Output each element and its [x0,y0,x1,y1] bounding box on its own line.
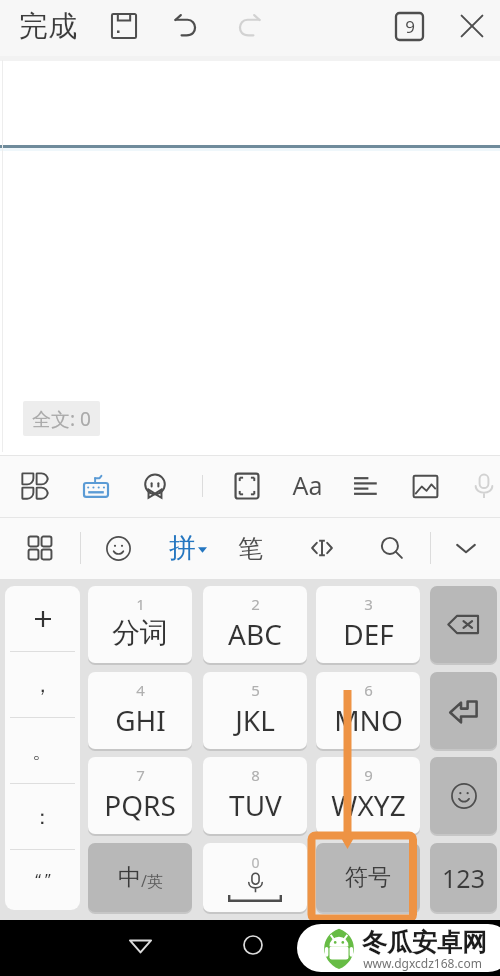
button[interactable]: Move cursor [304,530,340,566]
button[interactable]: 中 [88,843,192,912]
staticText: 6 [364,680,373,700]
button[interactable]: Voice [466,468,500,504]
staticText: 1 [136,594,145,614]
button[interactable]: Back [122,927,158,963]
staticText: TUV [229,786,282,824]
staticText: 冬瓜安卓网 [362,927,487,958]
button[interactable]: 123 [430,843,497,912]
staticText: ABC [228,615,282,653]
staticText: 完成 [19,8,77,45]
button[interactable]: 完成 [8,6,88,46]
button[interactable]: 0 [203,843,307,912]
staticText: ： [32,804,53,830]
staticText: 9 [405,15,415,38]
staticText: “ ” [35,869,51,891]
button[interactable]: “ ” [5,850,80,910]
staticText: 8 [251,765,260,785]
staticText: JKL [235,701,275,739]
button[interactable]: Hide keyboard [448,530,484,566]
staticText: 全文: 0 [32,406,91,432]
staticText: GHI [115,701,166,739]
button[interactable]: 笔 [230,530,270,566]
button[interactable]: Font [285,467,329,503]
staticText: Aa [292,468,323,502]
button[interactable]: 4 [88,672,192,749]
staticText: 拼 [169,531,196,565]
staticText: DEF [343,615,394,653]
button[interactable] [430,757,497,834]
staticText: 笔 [238,533,263,564]
button[interactable]: Save [106,8,142,44]
button[interactable]: Apps [17,468,53,504]
button[interactable]: Search [374,530,410,566]
button[interactable]: 7 [88,757,192,834]
staticText: 7 [136,765,145,785]
button[interactable]: Word count [391,8,427,44]
button[interactable]: Close [454,8,490,44]
button[interactable]: 2 [203,586,307,663]
button[interactable] [430,672,497,749]
button[interactable]: 5 [203,672,307,749]
staticText: www.dgxcdz168.com [363,955,482,971]
button[interactable]: 拼 [164,530,212,566]
button[interactable]: ， [5,652,80,717]
button[interactable]: 1 [88,586,192,663]
staticText: 中 [118,863,141,892]
button[interactable]: Keyboard [78,468,114,504]
staticText: 2 [251,594,260,614]
button[interactable]: 9 [316,757,420,834]
button[interactable]: 3 [316,586,420,663]
button[interactable]: Redo [231,8,267,44]
button[interactable] [430,586,497,663]
button[interactable]: Emoji [100,530,136,566]
staticText: PQRS [104,786,176,824]
staticText: ， [32,672,53,698]
button[interactable]: Undo [168,8,204,44]
button[interactable]: Image [407,468,443,504]
button[interactable]: 6 [316,672,420,749]
staticText: 9 [364,765,373,785]
staticText: 。 [32,738,53,764]
staticText: 123 [442,861,485,895]
button[interactable]: ： [5,784,80,849]
button[interactable]: 8 [203,757,307,834]
staticText: 符号 [345,863,391,892]
staticText: 0 [251,853,260,872]
staticText: 分词 [112,615,168,650]
staticText: MNO [334,701,403,739]
button[interactable]: Grid [22,530,58,566]
staticText: 3 [364,594,373,614]
button[interactable]: 符号 [316,843,420,912]
button[interactable] [5,586,80,651]
button[interactable]: Align [348,468,384,504]
staticText: /英 [141,870,163,892]
button[interactable]: 全文: 0 [23,401,100,436]
staticText: 5 [251,680,260,700]
button[interactable]: Crop [229,468,265,504]
button[interactable]: Sticker [137,468,173,504]
staticText: 4 [136,680,145,700]
button[interactable]: 。 [5,718,80,783]
staticText: WXYZ [331,786,406,824]
button[interactable]: Home [235,927,271,963]
